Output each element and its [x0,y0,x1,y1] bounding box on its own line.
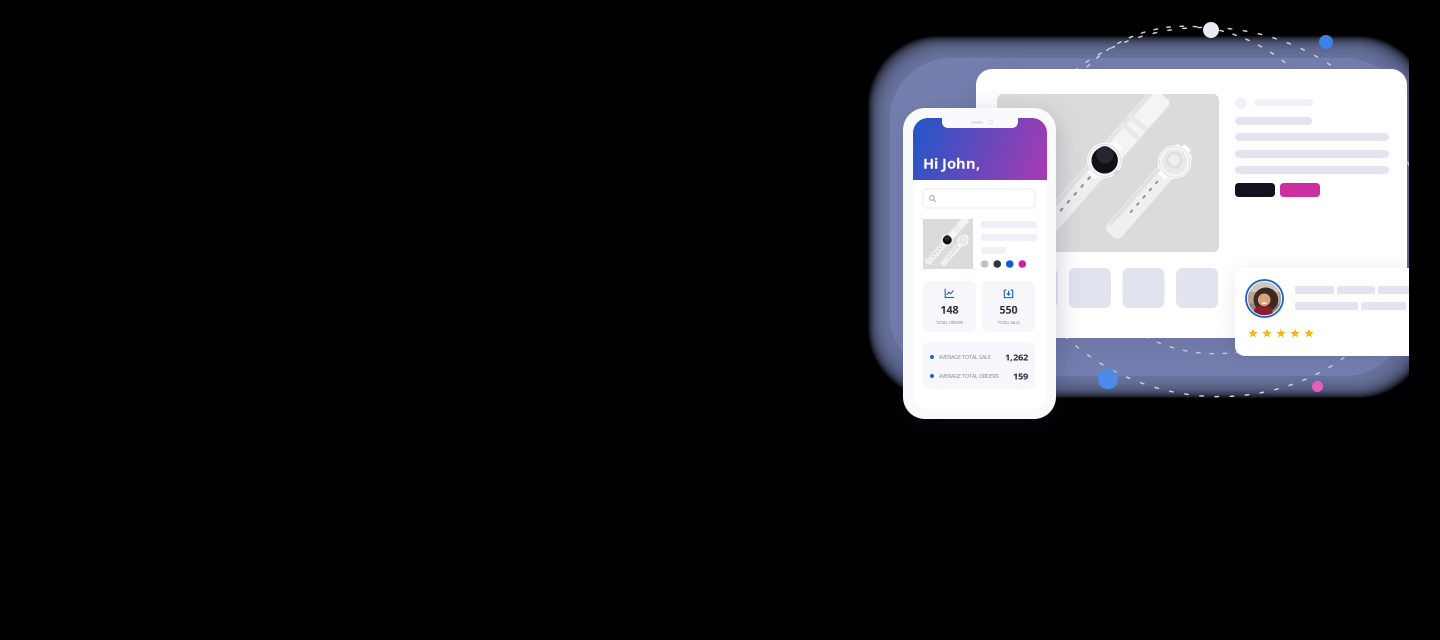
staticText: Hi John, [923,153,980,173]
button[interactable]: Product thumbnail [976,69,1407,338]
button[interactable]: Buy now [976,69,1407,338]
staticText: AVERAGE TOTAL ORDERS [939,372,999,380]
button[interactable]: 550 [913,118,1047,409]
button[interactable]: Search [913,118,1047,409]
button[interactable]: 148 [913,118,1047,409]
staticText: TOTAL SALE [997,320,1019,325]
staticText: 159 [1013,370,1028,382]
button[interactable]: Add to cart [976,69,1407,338]
staticText: TOTAL ORDERS [936,320,963,325]
button[interactable]: Product thumbnail [976,69,1407,338]
staticText: 1,262 [1005,351,1028,363]
staticText: 148 [940,302,958,317]
button[interactable]: Product thumbnail [976,69,1407,338]
staticText: 550 [999,302,1017,317]
staticText: AVERAGE TOTAL SALE [939,353,991,361]
button[interactable]: Product thumbnail [976,69,1407,338]
